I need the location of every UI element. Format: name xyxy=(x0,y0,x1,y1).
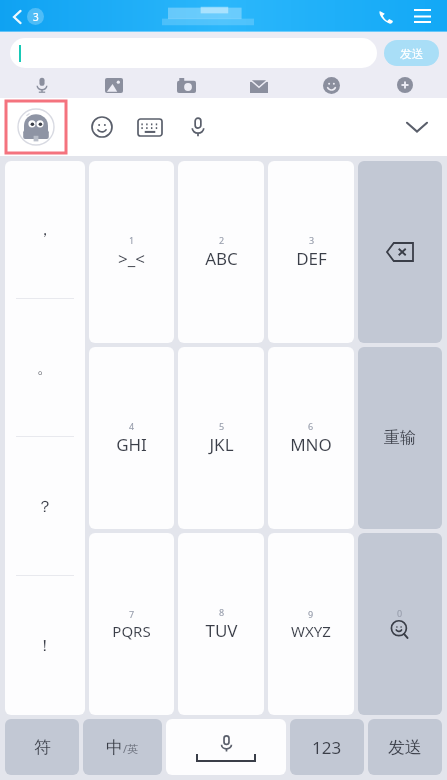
staticText: WXYZ xyxy=(291,621,331,641)
button[interactable]: Keyboard xyxy=(130,107,170,147)
button[interactable]: More xyxy=(368,72,441,98)
staticText: 2 xyxy=(219,234,225,246)
button[interactable]: Camera xyxy=(150,72,222,98)
button[interactable]: Voice xyxy=(6,72,78,98)
staticText: 发送 xyxy=(400,46,424,61)
button[interactable]: 发送 xyxy=(368,719,442,775)
staticText: 中 xyxy=(106,737,123,758)
staticText: ！ xyxy=(37,636,53,656)
staticText: GHI xyxy=(116,433,147,456)
staticText: 符 xyxy=(34,737,51,758)
staticText: 重输 xyxy=(384,428,416,448)
staticText: MNO xyxy=(290,433,332,456)
staticText: 6 xyxy=(308,420,314,432)
button[interactable]: Hide keyboard xyxy=(395,105,439,149)
staticText: JKL xyxy=(209,433,234,456)
button[interactable]: Backspace xyxy=(358,161,442,343)
button[interactable]: 发送 xyxy=(384,40,439,66)
staticText: 4 xyxy=(129,420,135,432)
button[interactable]: Voice input xyxy=(178,107,218,147)
staticText: 7 xyxy=(129,608,135,620)
staticText: 9 xyxy=(308,608,314,620)
staticText: >_< xyxy=(118,247,145,270)
button[interactable]: ？ xyxy=(5,437,85,576)
staticText: ABC xyxy=(205,247,238,270)
button[interactable]: Mail xyxy=(222,72,295,98)
staticText: 5 xyxy=(219,420,225,432)
button[interactable]: Emoji, 0 xyxy=(358,533,442,715)
staticText: 发送 xyxy=(388,737,422,758)
staticText: ？ xyxy=(37,497,53,517)
staticText: 3 xyxy=(33,10,39,24)
button[interactable]: 9 xyxy=(268,533,354,715)
button[interactable]: 8 xyxy=(178,533,264,715)
button[interactable]: Space, voice input xyxy=(166,719,286,775)
staticText: /英 xyxy=(123,741,139,756)
staticText: DEF xyxy=(296,247,327,270)
button[interactable]: 符 xyxy=(5,719,79,775)
button[interactable]: Emoji xyxy=(295,72,368,98)
button[interactable]: Photos xyxy=(78,72,150,98)
staticText: ， xyxy=(37,220,53,240)
staticText: 1 xyxy=(129,234,135,246)
button[interactable]: ， xyxy=(5,161,85,299)
button[interactable]: Menu xyxy=(407,1,437,31)
button[interactable]: 2 xyxy=(178,161,264,343)
staticText: 3 xyxy=(309,234,315,246)
button[interactable]: Assistant avatar xyxy=(6,101,66,153)
button[interactable]: ！ xyxy=(5,576,85,715)
button[interactable]: 3 xyxy=(268,161,354,343)
staticText: PQRS xyxy=(112,621,151,641)
staticText: 8 xyxy=(219,606,225,618)
button[interactable]: Emoji xyxy=(82,107,122,147)
button[interactable]: 4 xyxy=(89,347,174,529)
staticText: TUV xyxy=(205,619,238,642)
staticText: 。 xyxy=(37,358,53,378)
button[interactable]: Call xyxy=(371,1,401,31)
staticText: 0 xyxy=(397,607,403,619)
button[interactable] xyxy=(10,38,377,68)
button[interactable]: 中 xyxy=(83,719,162,775)
button[interactable]: 6 xyxy=(268,347,354,529)
button[interactable]: 5 xyxy=(178,347,264,529)
button[interactable]: 7 xyxy=(89,533,174,715)
button[interactable]: 重输 xyxy=(358,347,442,529)
button[interactable]: 123 xyxy=(290,719,364,775)
staticText: 123 xyxy=(312,736,342,759)
button[interactable]: 1 xyxy=(89,161,174,343)
button[interactable]: Back, 3 unread xyxy=(10,5,46,28)
